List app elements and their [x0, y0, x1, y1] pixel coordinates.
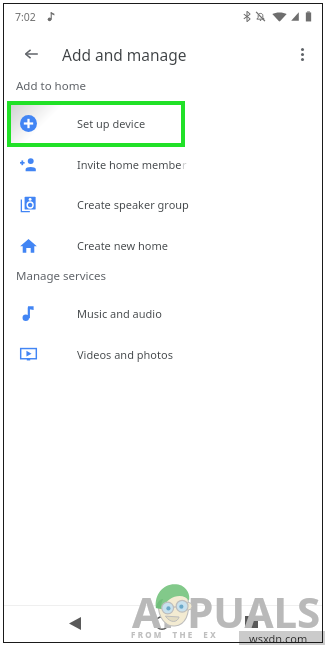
button[interactable]: Home [150, 611, 174, 635]
staticText: Music and audio [77, 306, 162, 321]
button[interactable]: Recents [239, 610, 263, 634]
staticText: Add to home [16, 78, 86, 94]
staticText: r [182, 157, 187, 172]
button[interactable]: Back [14, 37, 48, 71]
staticText: FROM THE EX [131, 629, 218, 640]
staticText: wsxdn.com [249, 631, 308, 645]
button[interactable]: More options [287, 39, 317, 69]
button[interactable]: Videos and photos [3, 334, 323, 375]
button[interactable]: Music and audio [3, 293, 323, 334]
button[interactable]: Back [63, 611, 87, 635]
button[interactable]: Set up device [3, 103, 323, 144]
staticText: Manage services [16, 268, 107, 284]
staticText: APPUALS [132, 583, 321, 640]
staticText: 7:02 [15, 10, 36, 24]
staticText: Create new home [77, 238, 168, 253]
button[interactable]: Invite home membe [3, 144, 323, 185]
button[interactable]: Create new home [3, 225, 323, 266]
staticText: Videos and photos [77, 347, 173, 362]
staticText: Invite home membe [77, 157, 182, 172]
button[interactable]: Create speaker group [3, 184, 323, 225]
staticText: Add and manage [62, 44, 187, 65]
staticText: Set up device [77, 116, 146, 131]
staticText: Create speaker group [77, 197, 189, 212]
